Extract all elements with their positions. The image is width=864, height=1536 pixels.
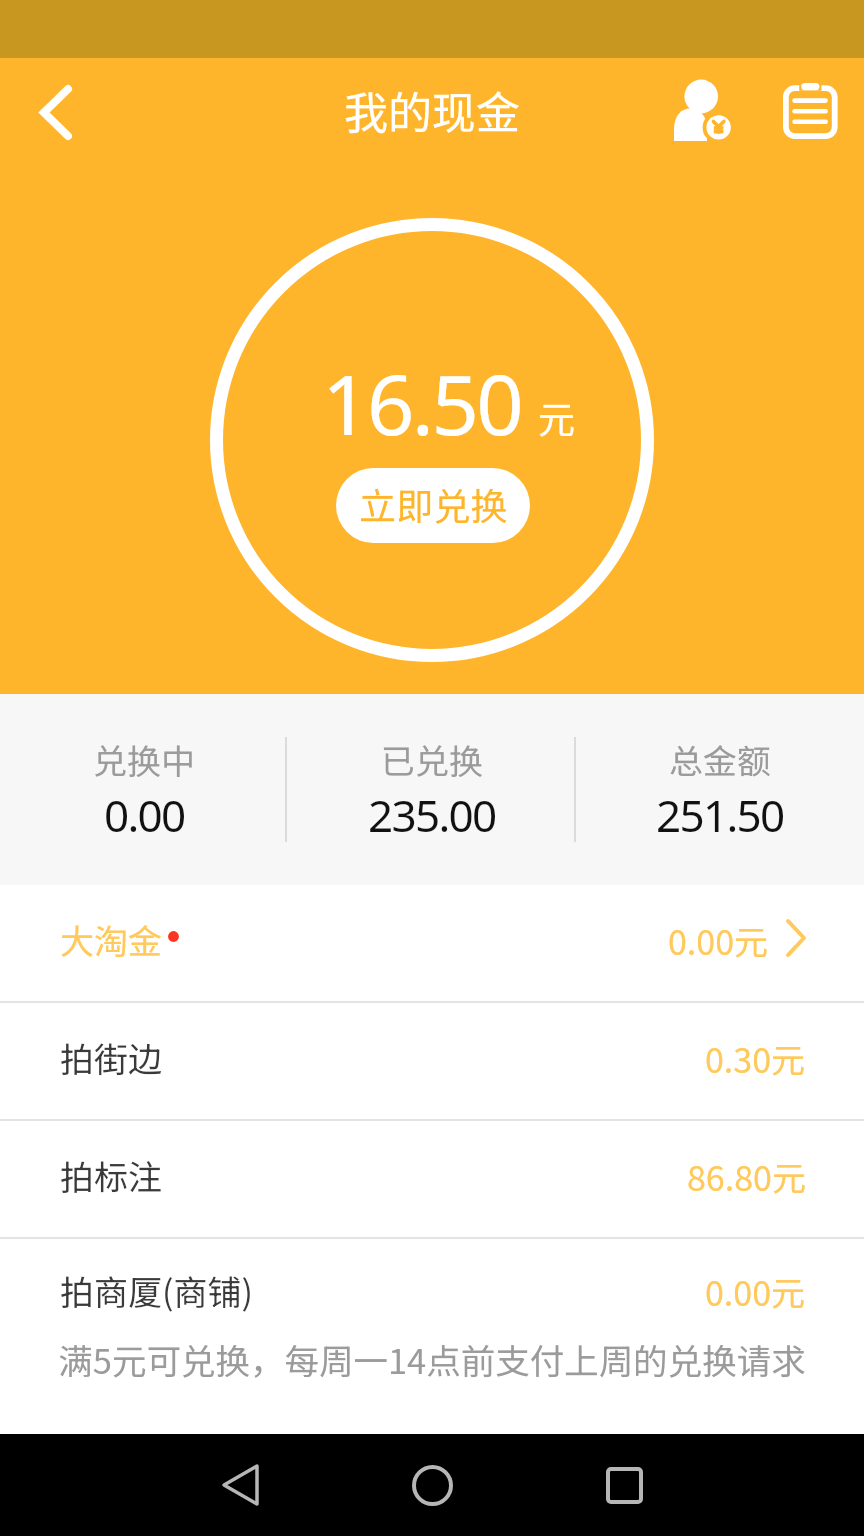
staticText: 兑换中 [93,735,195,784]
staticText: 拍商厦(商铺) [60,1266,253,1315]
staticText: 我的现金 [344,78,520,142]
button[interactable]: 拍街边 [0,1003,864,1119]
button[interactable]: Recents [528,1434,720,1536]
staticText: 立即兑换 [359,477,508,531]
staticText: 16.50 [322,346,522,459]
staticText: 满5元可兑换，每周一14点前支付上周的兑换请求 [0,1334,864,1384]
staticText: 235.00 [368,785,496,845]
button[interactable]: Back [144,1434,336,1536]
button[interactable]: Records [756,58,864,168]
staticText: 0.00元 [705,1267,806,1316]
staticText: 86.80元 [687,1152,806,1201]
staticText: 大淘金 [60,915,162,964]
staticText: 拍标注 [60,1151,162,1200]
staticText: 已兑换 [381,735,483,784]
button[interactable]: 拍商厦(商铺) [0,1239,864,1349]
button[interactable]: Back [0,58,108,168]
staticText: 拍街边 [60,1033,162,1082]
button[interactable]: 立即兑换 [336,468,530,543]
staticText: 251.50 [656,785,784,845]
button[interactable]: My account [654,58,756,168]
staticText: 0.30元 [705,1034,806,1083]
staticText: 总金额 [669,735,771,784]
button[interactable]: 大淘金 [0,885,864,1001]
staticText: 0.00 [104,785,185,845]
button[interactable]: Home [336,1434,528,1536]
button[interactable]: 拍标注 [0,1121,864,1237]
staticText: 元 [538,390,575,444]
staticText: 0.00元 [668,916,769,965]
